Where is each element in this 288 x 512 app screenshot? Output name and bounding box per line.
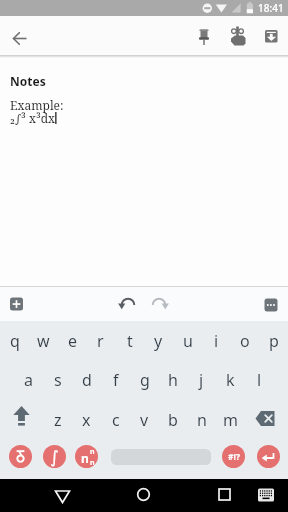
staticText: j: [199, 369, 204, 391]
button[interactable]: [223, 21, 253, 51]
button[interactable]: s: [43, 360, 72, 399]
button[interactable]: z: [43, 400, 72, 439]
staticText: ∫: [50, 447, 59, 467]
staticText: g: [140, 369, 150, 391]
staticText: d: [82, 369, 92, 391]
staticText: w: [37, 330, 50, 352]
button[interactable]: [146, 290, 172, 316]
staticText: f: [113, 369, 119, 391]
button[interactable]: [5, 292, 29, 316]
staticText: c: [112, 409, 120, 431]
button[interactable]: a: [14, 360, 43, 399]
staticText: n: [90, 447, 95, 457]
staticText: s: [54, 369, 62, 391]
staticText: b: [168, 409, 178, 431]
button[interactable]: [257, 445, 280, 468]
staticText: v: [140, 409, 149, 431]
staticText: Notes: [10, 73, 46, 89]
button[interactable]: f: [101, 360, 130, 399]
button[interactable]: l: [245, 360, 274, 399]
staticText: ₂∫³ x³dx: [10, 110, 56, 126]
staticText: x: [82, 409, 91, 431]
button[interactable]: y: [144, 321, 173, 360]
staticText: q: [10, 330, 20, 352]
staticText: u: [183, 330, 193, 352]
button[interactable]: [208, 479, 241, 512]
button[interactable]: ∫: [43, 445, 66, 468]
staticText: z: [54, 409, 62, 431]
button[interactable]: g: [130, 360, 159, 399]
staticText: a: [24, 369, 33, 391]
staticText: #!?: [228, 451, 240, 463]
button[interactable]: [256, 21, 286, 51]
button[interactable]: u: [173, 321, 202, 360]
staticText: t: [127, 330, 133, 352]
button[interactable]: [9, 445, 32, 468]
button[interactable]: k: [216, 360, 245, 399]
button[interactable]: r: [86, 321, 115, 360]
button[interactable]: e: [58, 321, 87, 360]
staticText: n: [81, 450, 89, 466]
staticText: e: [68, 330, 78, 352]
button[interactable]: t: [115, 321, 144, 360]
staticText: 18:41: [258, 1, 284, 15]
button[interactable]: h: [158, 360, 187, 399]
staticText: i: [214, 330, 219, 352]
button[interactable]: #!?: [222, 445, 245, 468]
button[interactable]: [2, 19, 38, 55]
button[interactable]: x: [72, 400, 101, 439]
button[interactable]: [250, 479, 283, 512]
button[interactable]: i: [202, 321, 231, 360]
staticText: n: [197, 409, 207, 431]
staticText: Example:: [10, 97, 64, 113]
button[interactable]: [127, 479, 160, 512]
button[interactable]: [189, 21, 219, 51]
staticText: y: [154, 330, 163, 352]
button[interactable]: c: [101, 400, 130, 439]
staticText: l: [257, 369, 262, 391]
button[interactable]: m: [216, 400, 245, 439]
staticText: m: [223, 409, 238, 431]
staticText: h: [168, 369, 178, 391]
button[interactable]: [247, 400, 287, 439]
button[interactable]: [259, 293, 283, 317]
staticText: k: [226, 369, 235, 391]
button[interactable]: b: [158, 400, 187, 439]
button[interactable]: v: [130, 400, 159, 439]
button[interactable]: n: [75, 445, 98, 468]
button[interactable]: o: [230, 321, 259, 360]
button[interactable]: [1, 400, 41, 439]
staticText: r: [97, 330, 104, 352]
staticText: o: [240, 330, 250, 352]
staticText: p: [269, 330, 279, 352]
button[interactable]: [46, 479, 79, 512]
button[interactable]: d: [72, 360, 101, 399]
button[interactable]: n: [187, 400, 216, 439]
button[interactable]: p: [259, 321, 288, 360]
button[interactable]: w: [29, 321, 58, 360]
button[interactable]: [115, 290, 141, 316]
button[interactable]: q: [0, 321, 29, 360]
button[interactable]: j: [187, 360, 216, 399]
staticText: n: [90, 458, 95, 468]
